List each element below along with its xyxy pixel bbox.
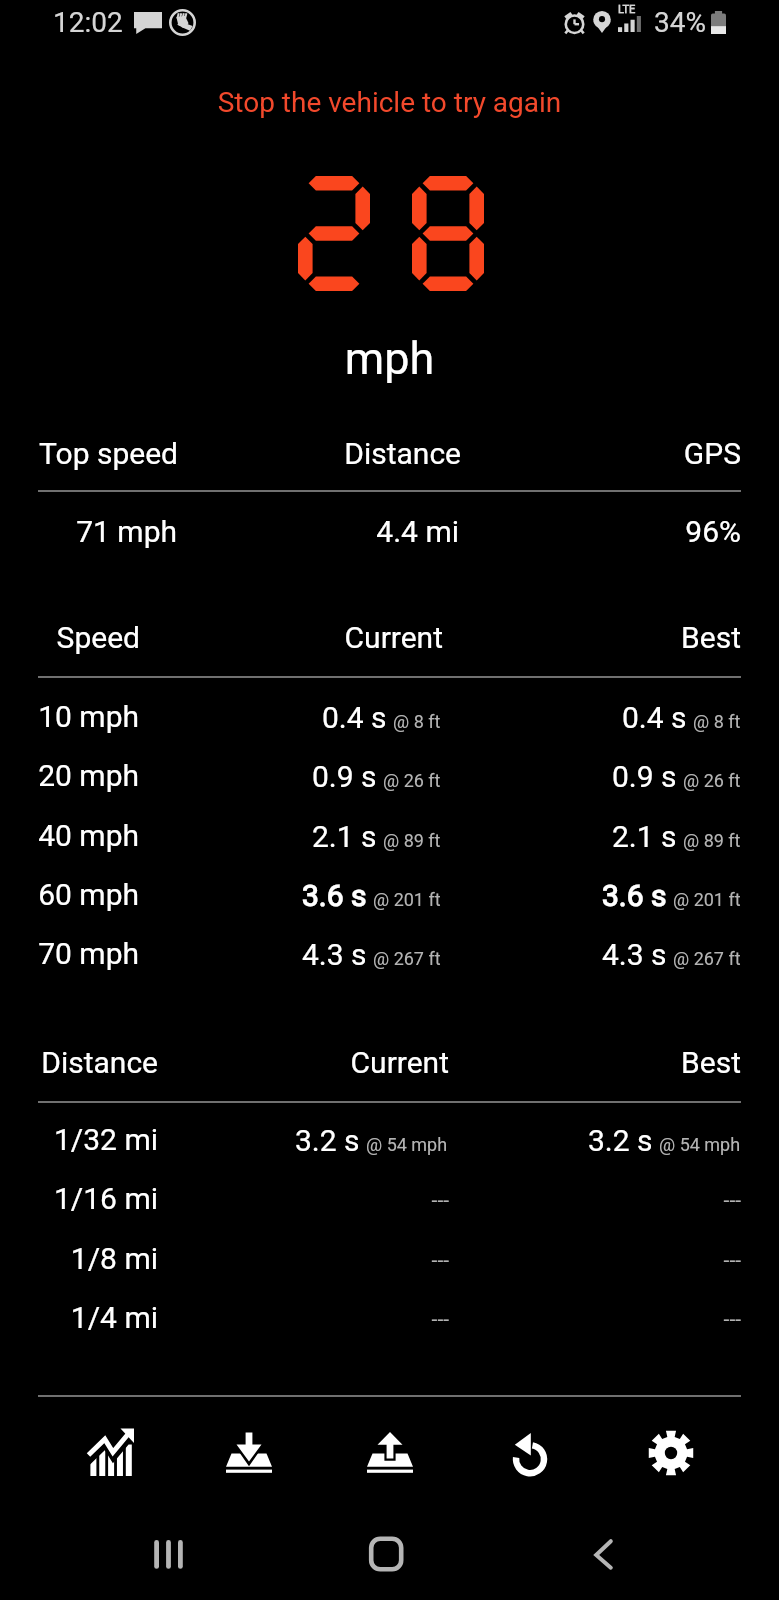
staticText: @ 54 mph bbox=[366, 1134, 448, 1155]
staticText: --- bbox=[0, 1307, 449, 1332]
staticText: 34% bbox=[654, 6, 760, 39]
staticText: --- bbox=[0, 1248, 741, 1273]
staticText: 12:02 bbox=[53, 6, 200, 39]
staticText: @ 267 ft bbox=[673, 948, 741, 969]
staticText: 1/4 mi bbox=[0, 1300, 158, 1335]
staticText: Best bbox=[0, 1045, 741, 1080]
staticText: LTE bbox=[618, 3, 660, 16]
staticText: --- bbox=[0, 1307, 741, 1332]
staticText: 0.4 s bbox=[622, 700, 687, 735]
button[interactable]: Statistics bbox=[63, 1405, 161, 1503]
staticText: 2.1 s bbox=[612, 819, 677, 854]
staticText: 40 mph bbox=[0, 818, 139, 853]
staticText: 0.9 s bbox=[612, 759, 677, 794]
staticText: @ 201 ft bbox=[673, 889, 741, 910]
staticText: 3.2 s bbox=[588, 1123, 653, 1158]
staticText: @ 26 ft bbox=[383, 770, 441, 791]
staticText: 2.1 s bbox=[312, 819, 377, 854]
staticText: 1/32 mi bbox=[0, 1122, 158, 1157]
button[interactable]: Settings bbox=[622, 1405, 720, 1503]
staticText: @ 267 ft bbox=[373, 948, 441, 969]
staticText: Stop the vehicle to try again bbox=[0, 86, 779, 119]
staticText: @ 8 ft bbox=[693, 711, 741, 732]
staticText: Best bbox=[0, 620, 741, 655]
staticText: Speed bbox=[0, 620, 140, 655]
button[interactable]: Home bbox=[341, 1509, 431, 1599]
staticText: 0.9 s bbox=[312, 759, 377, 794]
staticText: 4.3 s bbox=[602, 937, 667, 972]
button[interactable]: Export bbox=[341, 1405, 439, 1503]
button[interactable]: Import bbox=[200, 1405, 298, 1503]
staticText: @ 201 ft bbox=[373, 889, 441, 910]
staticText: 4.4 mi bbox=[0, 514, 459, 549]
staticText: Current bbox=[0, 620, 443, 655]
staticText: @ 54 mph bbox=[659, 1134, 741, 1155]
staticText: @ 89 ft bbox=[683, 830, 741, 851]
staticText: 4.3 s bbox=[302, 937, 367, 972]
staticText: --- bbox=[0, 1188, 741, 1213]
staticText: 20 mph bbox=[0, 758, 139, 793]
staticText: 96% bbox=[0, 514, 741, 549]
staticText: Top speed bbox=[0, 436, 178, 471]
staticText: 3.6 s bbox=[302, 878, 367, 913]
staticText: mph bbox=[0, 332, 779, 385]
staticText: 71 mph bbox=[0, 514, 177, 549]
staticText: 1/16 mi bbox=[0, 1181, 158, 1216]
staticText: GPS bbox=[0, 436, 741, 471]
staticText: Distance bbox=[0, 436, 461, 471]
staticText: 1/8 mi bbox=[0, 1241, 158, 1276]
staticText: @ 26 ft bbox=[683, 770, 741, 791]
staticText: 0.4 s bbox=[322, 700, 387, 735]
button[interactable]: Back bbox=[558, 1509, 648, 1599]
button[interactable]: Reset bbox=[481, 1405, 579, 1503]
staticText: 70 mph bbox=[0, 936, 139, 971]
staticText: @ 8 ft bbox=[393, 711, 441, 732]
button[interactable]: Recents bbox=[123, 1509, 213, 1599]
staticText: Current bbox=[0, 1045, 449, 1080]
staticText: --- bbox=[0, 1248, 449, 1273]
staticText: Distance bbox=[0, 1045, 158, 1080]
staticText: 60 mph bbox=[0, 877, 139, 912]
staticText: 10 mph bbox=[0, 699, 139, 734]
staticText: --- bbox=[0, 1188, 449, 1213]
staticText: 3.6 s bbox=[602, 878, 667, 913]
staticText: 3.2 s bbox=[295, 1123, 360, 1158]
staticText: @ 89 ft bbox=[383, 830, 441, 851]
